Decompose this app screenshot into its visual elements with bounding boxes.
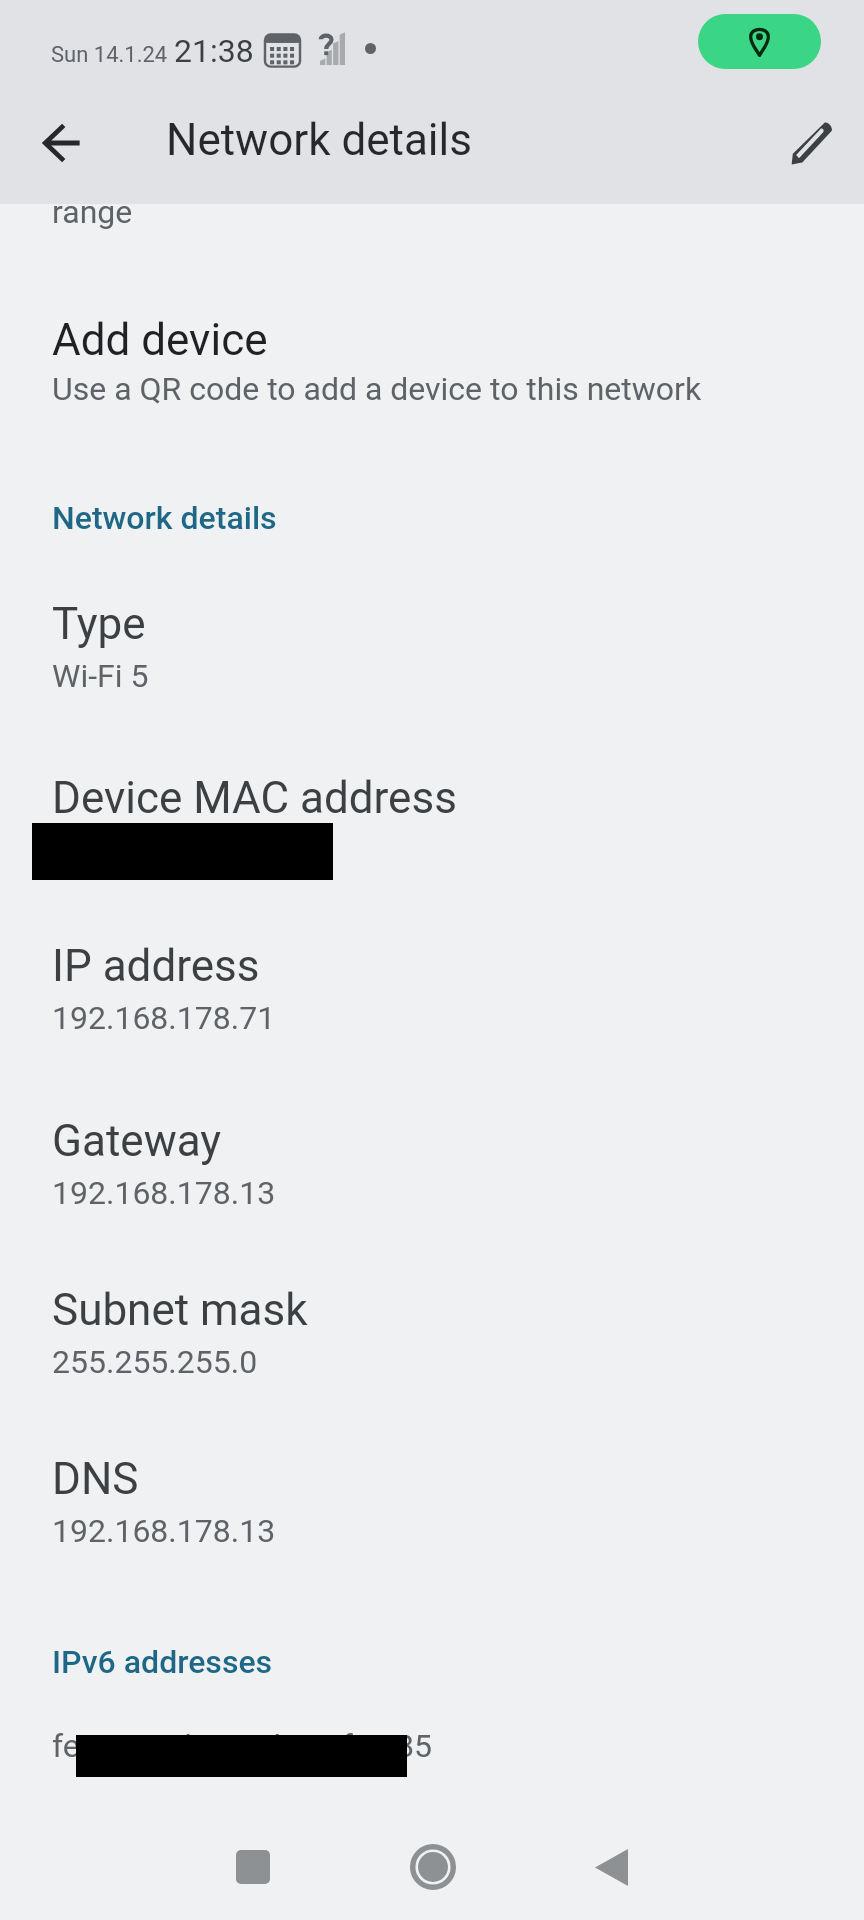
staticText: 192.168.178.71 [52,999,276,1037]
button[interactable]: Subnet mask [0,1284,864,1381]
staticText: IPv6 addresses [52,1643,273,1681]
staticText: 192.168.178.13 [52,1174,276,1212]
staticText: Device MAC address [52,772,457,824]
button[interactable]: Device MAC address [0,772,864,881]
staticText: Type [52,598,146,650]
staticText: Sun 14.1.24 [51,42,168,68]
staticText: Add device [52,314,268,366]
staticText: 255.255.255.0 [52,1343,258,1381]
staticText: DNS [52,1453,139,1505]
button[interactable]: Gateway [0,1115,864,1212]
button[interactable]: Navigate up [26,107,98,179]
button[interactable]: Home [398,1832,468,1902]
button[interactable]: Edit [775,107,847,179]
button[interactable]: Recent apps [218,1832,288,1902]
staticText: 21:38 [174,32,254,70]
staticText: Subnet mask [52,1284,308,1336]
staticText: fe80::1a2b:3c4d:5e6f:7a85 [52,1727,432,1765]
staticText: IP address [52,940,260,992]
staticText: Gateway [52,1115,222,1167]
button[interactable]: Type [0,598,864,695]
button[interactable]: Location in use [698,14,821,69]
button[interactable]: Back [576,1832,646,1902]
staticText: 192.168.178.13 [52,1512,276,1550]
staticText: Use a QR code to add a device to this ne… [52,370,702,408]
staticText: Wi-Fi 5 [52,657,149,695]
button[interactable]: Add device [0,314,864,408]
staticText: Network details [52,499,277,537]
button[interactable]: DNS [0,1453,864,1550]
button[interactable]: fe80::1a2b:3c4d:5e6f:7a85 [0,1727,864,1769]
staticText: Network details [166,114,472,166]
button[interactable]: IP address [0,940,864,1037]
staticText: range [52,193,133,231]
